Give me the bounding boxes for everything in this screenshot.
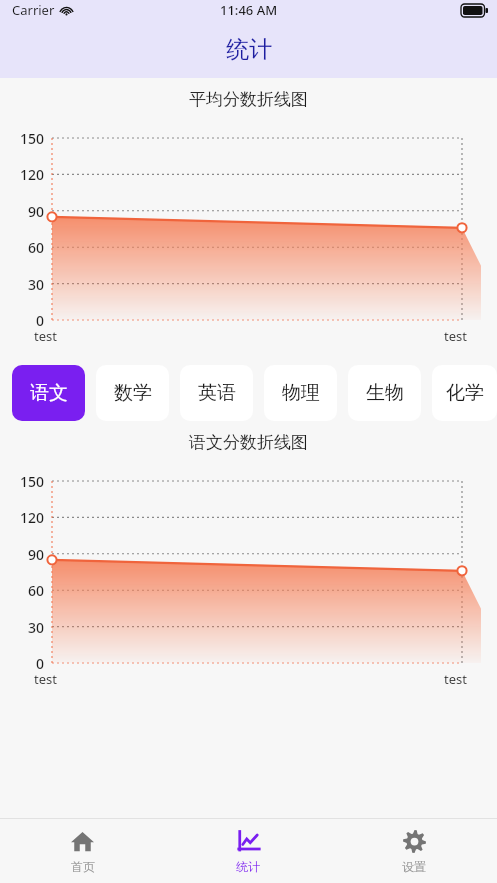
button[interactable]: 语文 [12,365,85,421]
staticText: 语文 [30,381,68,405]
button[interactable]: 物理 [264,365,337,421]
staticText: 90 [0,202,44,221]
staticText: 首页 [71,859,95,874]
staticText: 化学 [446,381,484,405]
button[interactable]: 设置 [331,819,497,883]
button[interactable]: 化学 [432,365,497,421]
staticText: 30 [0,275,44,294]
staticText: 生物 [366,381,404,405]
button[interactable]: 英语 [180,365,253,421]
staticText: 统计 [236,859,260,874]
staticText: 平均分数折线图 [0,89,497,110]
staticText: 30 [0,618,44,637]
button[interactable]: 统计 [165,819,331,883]
button[interactable]: 首页 [0,819,165,883]
staticText: 150 [0,129,44,148]
staticText: 150 [0,472,44,491]
staticText: 0 [0,311,44,330]
staticText: 数学 [114,381,152,405]
staticText: test [444,670,467,688]
staticText: test [34,327,57,345]
staticText: 设置 [402,859,426,874]
staticText: 90 [0,545,44,564]
staticText: test [34,670,57,688]
staticText: 60 [0,581,44,600]
staticText: 120 [0,508,44,527]
button[interactable]: 数学 [96,365,169,421]
staticText: 120 [0,165,44,184]
staticText: 语文分数折线图 [0,432,497,453]
button[interactable]: 生物 [348,365,421,421]
staticText: 英语 [198,381,236,405]
staticText: Carrier [12,1,55,19]
staticText: 物理 [282,381,320,405]
staticText: 11:46 AM [220,1,278,19]
staticText: 0 [0,654,44,673]
staticText: 60 [0,238,44,257]
staticText: 统计 [226,35,272,64]
staticText: test [444,327,467,345]
